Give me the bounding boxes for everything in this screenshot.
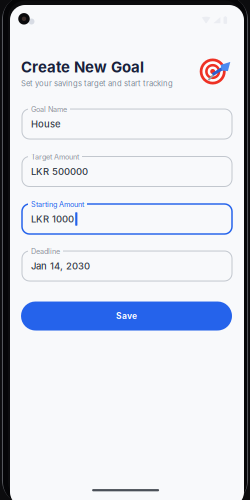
- staticText: Jan 14, 2030: [31, 260, 90, 272]
- button[interactable]: LKR 1000: [22, 204, 232, 234]
- button[interactable]: House: [22, 109, 232, 139]
- staticText: Create New Goal: [21, 58, 144, 76]
- button[interactable]: Jan 14, 2030: [22, 251, 232, 281]
- staticText: Deadline: [31, 247, 60, 256]
- staticText: Starting Amount: [31, 200, 84, 209]
- staticText: LKR 500000: [31, 166, 88, 177]
- staticText: Save: [116, 311, 137, 321]
- staticText: LKR 1000: [31, 213, 74, 225]
- staticText: Goal Name: [31, 105, 67, 114]
- button[interactable]: LKR 500000: [22, 156, 232, 186]
- staticText: Target Amount: [31, 152, 79, 161]
- staticText: House: [31, 118, 61, 130]
- button[interactable]: Save: [21, 301, 232, 330]
- staticText: Set your savings target and start tracki…: [21, 79, 173, 88]
